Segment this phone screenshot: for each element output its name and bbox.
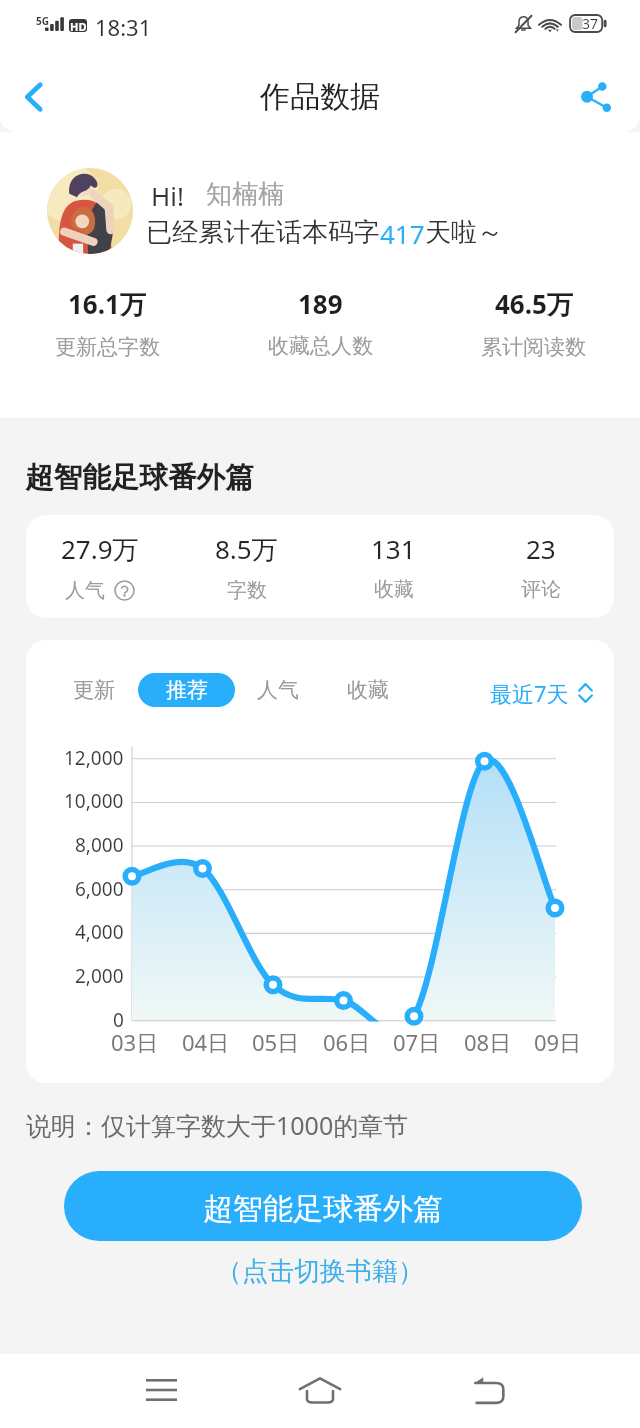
- staticText: 04日: [182, 1027, 230, 1057]
- staticText: 最近7天: [490, 678, 569, 708]
- button[interactable]: Back: [5, 68, 63, 126]
- staticText: 2,000: [75, 963, 124, 989]
- staticText: 知楠楠: [206, 178, 284, 211]
- staticText: 人气: [257, 677, 299, 703]
- button[interactable]: 推荐: [138, 673, 235, 707]
- staticText: 23: [526, 531, 556, 566]
- staticText: 131: [371, 531, 416, 566]
- staticText: 37: [582, 14, 599, 33]
- button[interactable]: 收藏: [338, 673, 398, 707]
- button[interactable]: 最近7天: [490, 678, 593, 708]
- staticText: 05日: [252, 1027, 300, 1057]
- staticText: 0: [113, 1007, 124, 1033]
- staticText: 超智能足球番外篇: [25, 459, 254, 495]
- button[interactable]: Back: [458, 1360, 518, 1420]
- staticText: 推荐: [166, 677, 208, 703]
- button[interactable]: （点击切换书籍）: [190, 1250, 450, 1292]
- staticText: 天啦～: [425, 216, 503, 249]
- staticText: 417: [380, 216, 425, 251]
- staticText: 5G: [36, 14, 49, 28]
- staticText: Hi!: [151, 178, 184, 213]
- staticText: 09日: [534, 1027, 582, 1057]
- staticText: 10,000: [64, 788, 124, 814]
- staticText: 评论: [521, 577, 561, 602]
- staticText: 8,000: [75, 832, 124, 858]
- staticText: 人气: [65, 578, 105, 603]
- staticText: 46.5万: [495, 286, 573, 322]
- staticText: 07日: [393, 1027, 441, 1057]
- staticText: 更新: [73, 677, 115, 703]
- button[interactable]: 超智能足球番外篇: [64, 1171, 582, 1241]
- staticText: 收藏: [347, 677, 389, 703]
- staticText: 27.9万: [61, 531, 139, 567]
- staticText: 收藏总人数: [268, 333, 373, 359]
- button[interactable]: Share: [567, 68, 625, 126]
- staticText: 更新总字数: [55, 334, 160, 360]
- staticText: 累计阅读数: [481, 334, 586, 360]
- staticText: 收藏: [374, 577, 414, 602]
- staticText: 超智能足球番外篇: [203, 1190, 443, 1228]
- staticText: 08日: [464, 1027, 512, 1057]
- button[interactable]: Recent apps: [131, 1360, 191, 1420]
- staticText: 8.5万: [215, 531, 278, 567]
- staticText: 6,000: [75, 876, 124, 902]
- button[interactable]: Home: [290, 1360, 350, 1420]
- staticText: HD: [70, 19, 87, 32]
- staticText: 4,000: [75, 919, 124, 945]
- staticText: 12,000: [64, 745, 124, 771]
- staticText: 189: [298, 286, 343, 321]
- staticText: （点击切换书籍）: [216, 1255, 424, 1288]
- staticText: 03日: [111, 1027, 159, 1057]
- staticText: 作品数据: [260, 78, 380, 116]
- button[interactable]: 更新: [64, 673, 124, 707]
- staticText: 已经累计在话本码字: [146, 216, 380, 249]
- button[interactable]: 人气: [248, 673, 308, 707]
- staticText: 16.1万: [68, 286, 146, 322]
- staticText: 说明：仅计算字数大于1000的章节: [26, 1108, 409, 1142]
- staticText: 字数: [227, 578, 267, 603]
- staticText: 06日: [323, 1027, 371, 1057]
- staticText: 18:31: [95, 12, 152, 42]
